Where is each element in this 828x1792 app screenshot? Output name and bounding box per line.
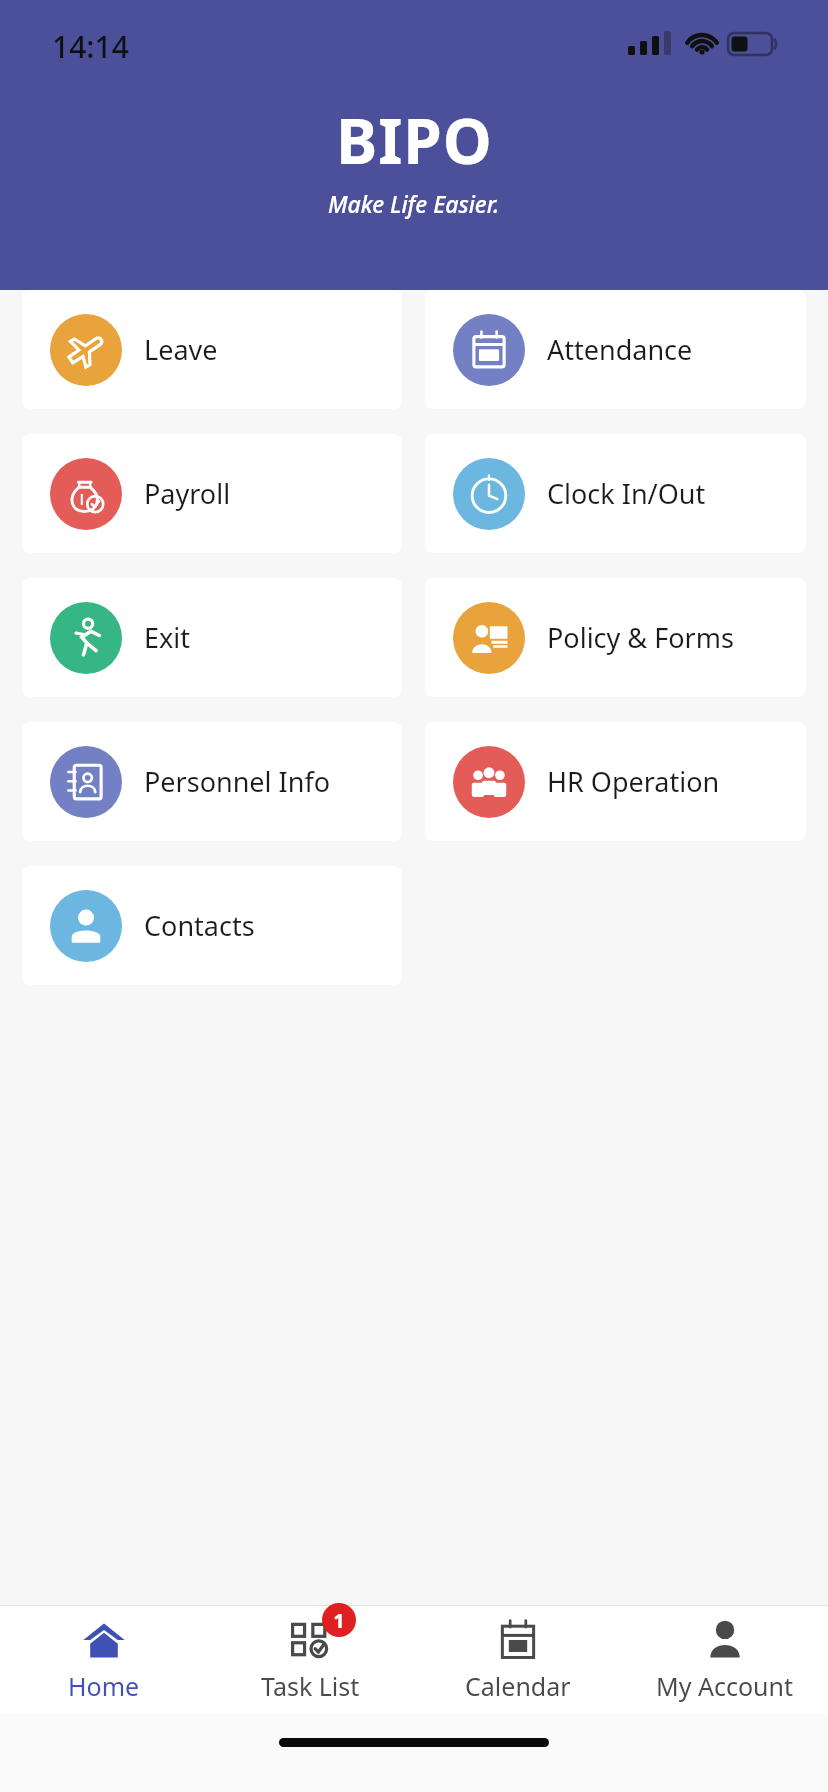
button[interactable]: Exit — [22, 578, 402, 697]
button[interactable]: Policy & Forms — [425, 578, 806, 697]
staticText: Policy & Forms — [547, 619, 734, 656]
staticText: Make Life Easier. — [328, 188, 500, 219]
staticText: Payroll — [144, 475, 231, 512]
staticText: Clock In/Out — [547, 475, 706, 512]
button[interactable]: Calendar — [414, 1606, 621, 1714]
staticText: BIPO — [336, 98, 493, 182]
button[interactable]: Home — [0, 1606, 207, 1714]
staticText: Exit — [144, 619, 191, 656]
button[interactable]: 1 — [207, 1606, 414, 1714]
staticText: Attendance — [547, 331, 693, 368]
button[interactable]: Clock In/Out — [425, 434, 806, 553]
staticText: HR Operation — [547, 763, 720, 800]
staticText: Home — [68, 1669, 140, 1703]
staticText: Task List — [261, 1669, 360, 1703]
button[interactable]: HR Operation — [425, 722, 806, 841]
staticText: Leave — [144, 331, 218, 368]
button[interactable]: Attendance — [425, 290, 806, 409]
staticText: My Account — [656, 1669, 793, 1703]
staticText: Calendar — [465, 1669, 571, 1703]
staticText: 14:14 — [52, 26, 129, 66]
button[interactable]: Personnel Info — [22, 722, 402, 841]
button[interactable]: Leave — [22, 290, 402, 409]
button[interactable]: Contacts — [22, 866, 402, 985]
staticText: 1 — [333, 1607, 345, 1634]
staticText: Contacts — [144, 907, 255, 944]
button[interactable]: My Account — [621, 1606, 828, 1714]
staticText: Personnel Info — [144, 763, 331, 800]
button[interactable]: Payroll — [22, 434, 402, 553]
